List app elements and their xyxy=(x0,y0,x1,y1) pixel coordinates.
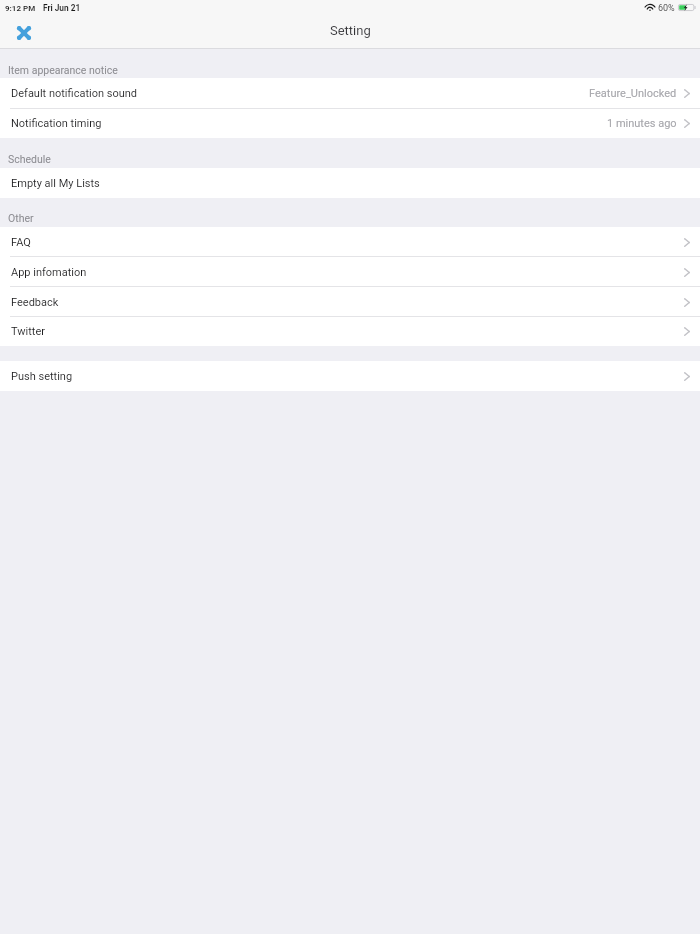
button[interactable]: App infomation xyxy=(0,257,700,287)
button[interactable]: Twitter xyxy=(0,316,700,346)
staticText: Notification timing xyxy=(11,117,102,130)
staticText: Feature_Unlocked xyxy=(589,87,677,100)
staticText: Item appearance notice xyxy=(8,64,118,76)
button[interactable]: Close xyxy=(3,17,45,48)
staticText: Default notification sound xyxy=(11,87,138,100)
staticText: Setting xyxy=(330,23,371,38)
button[interactable]: Push setting xyxy=(0,361,700,391)
button[interactable]: Notification timing xyxy=(0,108,700,138)
staticText: 1 minutes ago xyxy=(607,117,677,130)
staticText: Feedback xyxy=(11,296,59,309)
staticText: Fri Jun 21 xyxy=(43,3,81,13)
button[interactable]: Empty all My Lists xyxy=(0,168,700,198)
staticText: Empty all My Lists xyxy=(11,177,100,190)
staticText: Push setting xyxy=(11,370,73,383)
staticText: FAQ xyxy=(11,236,31,249)
staticText: 60% xyxy=(658,3,675,14)
staticText: 9:12 PM xyxy=(5,4,36,13)
button[interactable]: FAQ xyxy=(0,227,700,257)
staticText: App infomation xyxy=(11,266,87,279)
staticText: Other xyxy=(8,212,34,224)
staticText: Twitter xyxy=(11,325,45,338)
staticText: Schedule xyxy=(8,153,51,165)
button[interactable]: Default notification sound xyxy=(0,78,700,108)
button[interactable]: Feedback xyxy=(0,287,700,317)
